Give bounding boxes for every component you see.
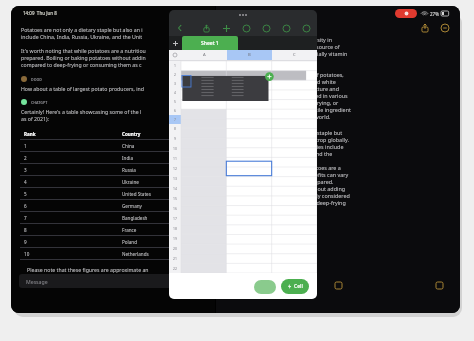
staticText: 3: [174, 81, 176, 86]
button[interactable]: New sheet: [169, 36, 182, 50]
button[interactable]: Cell: [287, 279, 303, 294]
staticText: 14: [173, 186, 177, 191]
staticText: rous varieties of potatoes,: [278, 71, 344, 78]
button[interactable]: Account: [332, 279, 345, 292]
staticText: 8: [174, 126, 176, 131]
staticText: 9: [174, 136, 176, 141]
staticText: 18: [173, 226, 177, 231]
staticText: d dietary fiber.: [278, 57, 315, 64]
staticText: Please note that these figures are appro…: [27, 266, 149, 273]
staticText: 12: [173, 166, 177, 171]
staticText: 21: [173, 256, 177, 261]
staticText: 22: [173, 266, 177, 271]
button[interactable]: Copy: [254, 280, 276, 294]
staticText: vitamins (especially vitamin: [278, 50, 348, 57]
staticText: ey can be cooked in various: [278, 92, 348, 99]
staticText: nt agricultural crop globally.: [278, 136, 349, 143]
staticText: DOOD: [31, 77, 42, 82]
staticText: 17: [173, 216, 177, 221]
staticText: the health benefits can vary: [278, 171, 349, 178]
staticText: C: [293, 52, 296, 58]
staticText: with its own texture and: [278, 85, 339, 92]
staticText: oiling, baking, frying, or: [278, 99, 339, 106]
staticText: ssia, Ukraine, and the: [278, 150, 333, 157]
staticText: re an excellent source of: [278, 43, 340, 50]
staticText: Message: [26, 278, 48, 285]
button[interactable]: Message: [19, 274, 209, 288]
staticText: that while potatoes are a: [278, 164, 341, 171]
staticText: Sheet 1: [201, 40, 219, 47]
staticText: Country: [122, 131, 202, 137]
staticText: France: [122, 227, 202, 233]
staticText: Bangladesh: [122, 215, 202, 221]
staticText: Cell: [294, 283, 303, 290]
staticText: 3: [24, 167, 122, 173]
staticText: How about a table of largest potato prod…: [21, 85, 145, 92]
staticText: 16: [173, 206, 177, 211]
staticText: 14:09 Thu Jun 8: [23, 10, 57, 16]
staticText: CHATGPT: [31, 100, 48, 105]
button[interactable]: A: [181, 50, 227, 60]
staticText: 9: [24, 239, 122, 245]
staticText: Russia: [122, 167, 202, 173]
staticText: 13: [173, 176, 177, 181]
button[interactable]: Sheet 1: [182, 36, 238, 50]
staticText: Rank: [24, 131, 122, 137]
staticText: 10: [173, 146, 177, 151]
staticText: 4: [174, 90, 176, 95]
staticText: Certainly! Here's a table showcasing som…: [21, 108, 142, 115]
staticText: as of 2021):: [21, 115, 49, 122]
button[interactable]: Back: [174, 22, 186, 34]
staticText: r oils is generally considered: [278, 192, 350, 199]
staticText: 6: [24, 203, 122, 209]
staticText: India: [122, 155, 202, 161]
staticText: 15: [173, 196, 177, 201]
staticText: B: [248, 52, 251, 58]
button[interactable]: Share: [200, 22, 212, 34]
staticText: n compared to deep-frying: [278, 199, 346, 206]
staticText: 20: [173, 246, 177, 251]
staticText: compared to deep-frying or consuming the…: [21, 61, 142, 68]
staticText: 6: [174, 108, 176, 113]
staticText: United States: [122, 191, 202, 197]
button[interactable]: Format: [240, 22, 252, 34]
staticText: t only a dietary staple but: [278, 129, 343, 136]
button[interactable]: More: [300, 22, 312, 34]
staticText: 5: [24, 191, 122, 197]
button[interactable]: Close: [438, 21, 452, 35]
staticText: es around the world.: [278, 113, 331, 120]
button[interactable]: Insert: [280, 22, 292, 34]
staticText: 2: [24, 155, 122, 161]
staticText: g potatoes without adding: [278, 185, 346, 192]
staticText: 5: [174, 99, 176, 104]
staticText: 8: [24, 227, 122, 233]
staticText: 10: [24, 251, 122, 257]
staticText: Poland: [122, 239, 202, 245]
staticText: Ukraine: [122, 179, 202, 185]
staticText: It's worth noting that while potatoes ar…: [21, 47, 146, 54]
button[interactable]: C: [272, 50, 317, 60]
staticText: 2: [174, 72, 176, 77]
staticText: 4: [24, 179, 122, 185]
staticText: Germany: [122, 203, 202, 209]
button[interactable]: Add: [220, 22, 232, 34]
staticText: ow they are prepared.: [278, 178, 334, 185]
staticText: 11: [173, 156, 177, 161]
staticText: those and viscosity in: [278, 36, 332, 43]
button[interactable]: B: [227, 50, 272, 60]
staticText: include China, India, Russia, Ukraine, a…: [21, 33, 143, 40]
staticText: , red, yellow, and white: [278, 78, 336, 85]
staticText: 19: [173, 236, 177, 241]
button[interactable]: Compose: [433, 279, 446, 292]
staticText: 7: [174, 117, 176, 122]
staticText: 7: [24, 215, 122, 221]
staticText: Potatoes are not only a dietary staple b…: [21, 26, 143, 33]
staticText: oducing countries include: [278, 143, 344, 150]
staticText: A: [203, 52, 206, 58]
staticText: 27%: [430, 11, 439, 17]
staticText: prepared. Boiling or baking potatoes wit…: [21, 54, 146, 61]
button[interactable]: Share: [418, 21, 432, 35]
button[interactable]: Brush: [260, 22, 272, 34]
